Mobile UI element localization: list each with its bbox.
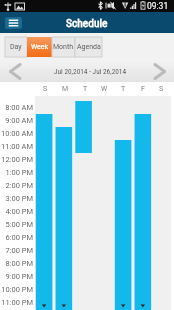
staticText: 11:00 AM bbox=[1, 142, 33, 151]
staticText: M bbox=[62, 85, 69, 93]
button[interactable]: Month bbox=[52, 37, 75, 57]
staticText: 8:00 AM bbox=[5, 103, 33, 112]
button[interactable]: Previous week bbox=[0, 61, 28, 82]
staticText: S bbox=[159, 85, 164, 93]
staticText: 10:00 AM bbox=[1, 129, 33, 138]
staticText: 2:00 PM bbox=[5, 181, 33, 190]
staticText: 5:00 PM bbox=[5, 220, 33, 229]
button[interactable]: Day bbox=[5, 37, 27, 57]
button[interactable] bbox=[75, 101, 92, 153]
button[interactable]: Next week bbox=[146, 61, 174, 82]
staticText: 9:00 AM bbox=[5, 116, 33, 125]
staticText: Month bbox=[53, 43, 74, 51]
button[interactable] bbox=[135, 114, 152, 310]
button[interactable]: Open navigation menu bbox=[5, 17, 22, 29]
staticText: Day bbox=[10, 43, 22, 51]
staticText: 09:31 bbox=[147, 1, 169, 11]
staticText: 3:00 PM bbox=[5, 194, 33, 203]
staticText: 10:00 PM bbox=[1, 285, 33, 294]
button[interactable]: Agenda bbox=[75, 37, 102, 57]
staticText: Schedule bbox=[66, 16, 108, 29]
staticText: 11:00 PM bbox=[1, 298, 33, 307]
staticText: Week bbox=[31, 43, 49, 51]
button[interactable] bbox=[115, 140, 132, 310]
staticText: 1:00 PM bbox=[5, 168, 33, 177]
staticText: Agenda bbox=[77, 43, 101, 51]
button[interactable] bbox=[36, 114, 53, 310]
staticText: 7:00 PM bbox=[5, 246, 33, 255]
staticText: 9:00 PM bbox=[5, 272, 33, 281]
button[interactable]: Week bbox=[27, 37, 52, 57]
staticText: T bbox=[121, 85, 126, 93]
staticText: 8:00 PM bbox=[5, 259, 33, 268]
staticText: 4:00 PM bbox=[5, 207, 33, 216]
staticText: F bbox=[141, 85, 145, 93]
button[interactable] bbox=[56, 127, 73, 310]
staticText: Jul 20,2014 - Jul 26,2014 bbox=[54, 67, 127, 76]
staticText: T bbox=[83, 85, 88, 93]
staticText: 12:00 PM bbox=[1, 155, 33, 164]
staticText: W bbox=[101, 85, 108, 93]
staticText: 6:00 PM bbox=[5, 233, 33, 242]
staticText: S bbox=[43, 85, 48, 93]
